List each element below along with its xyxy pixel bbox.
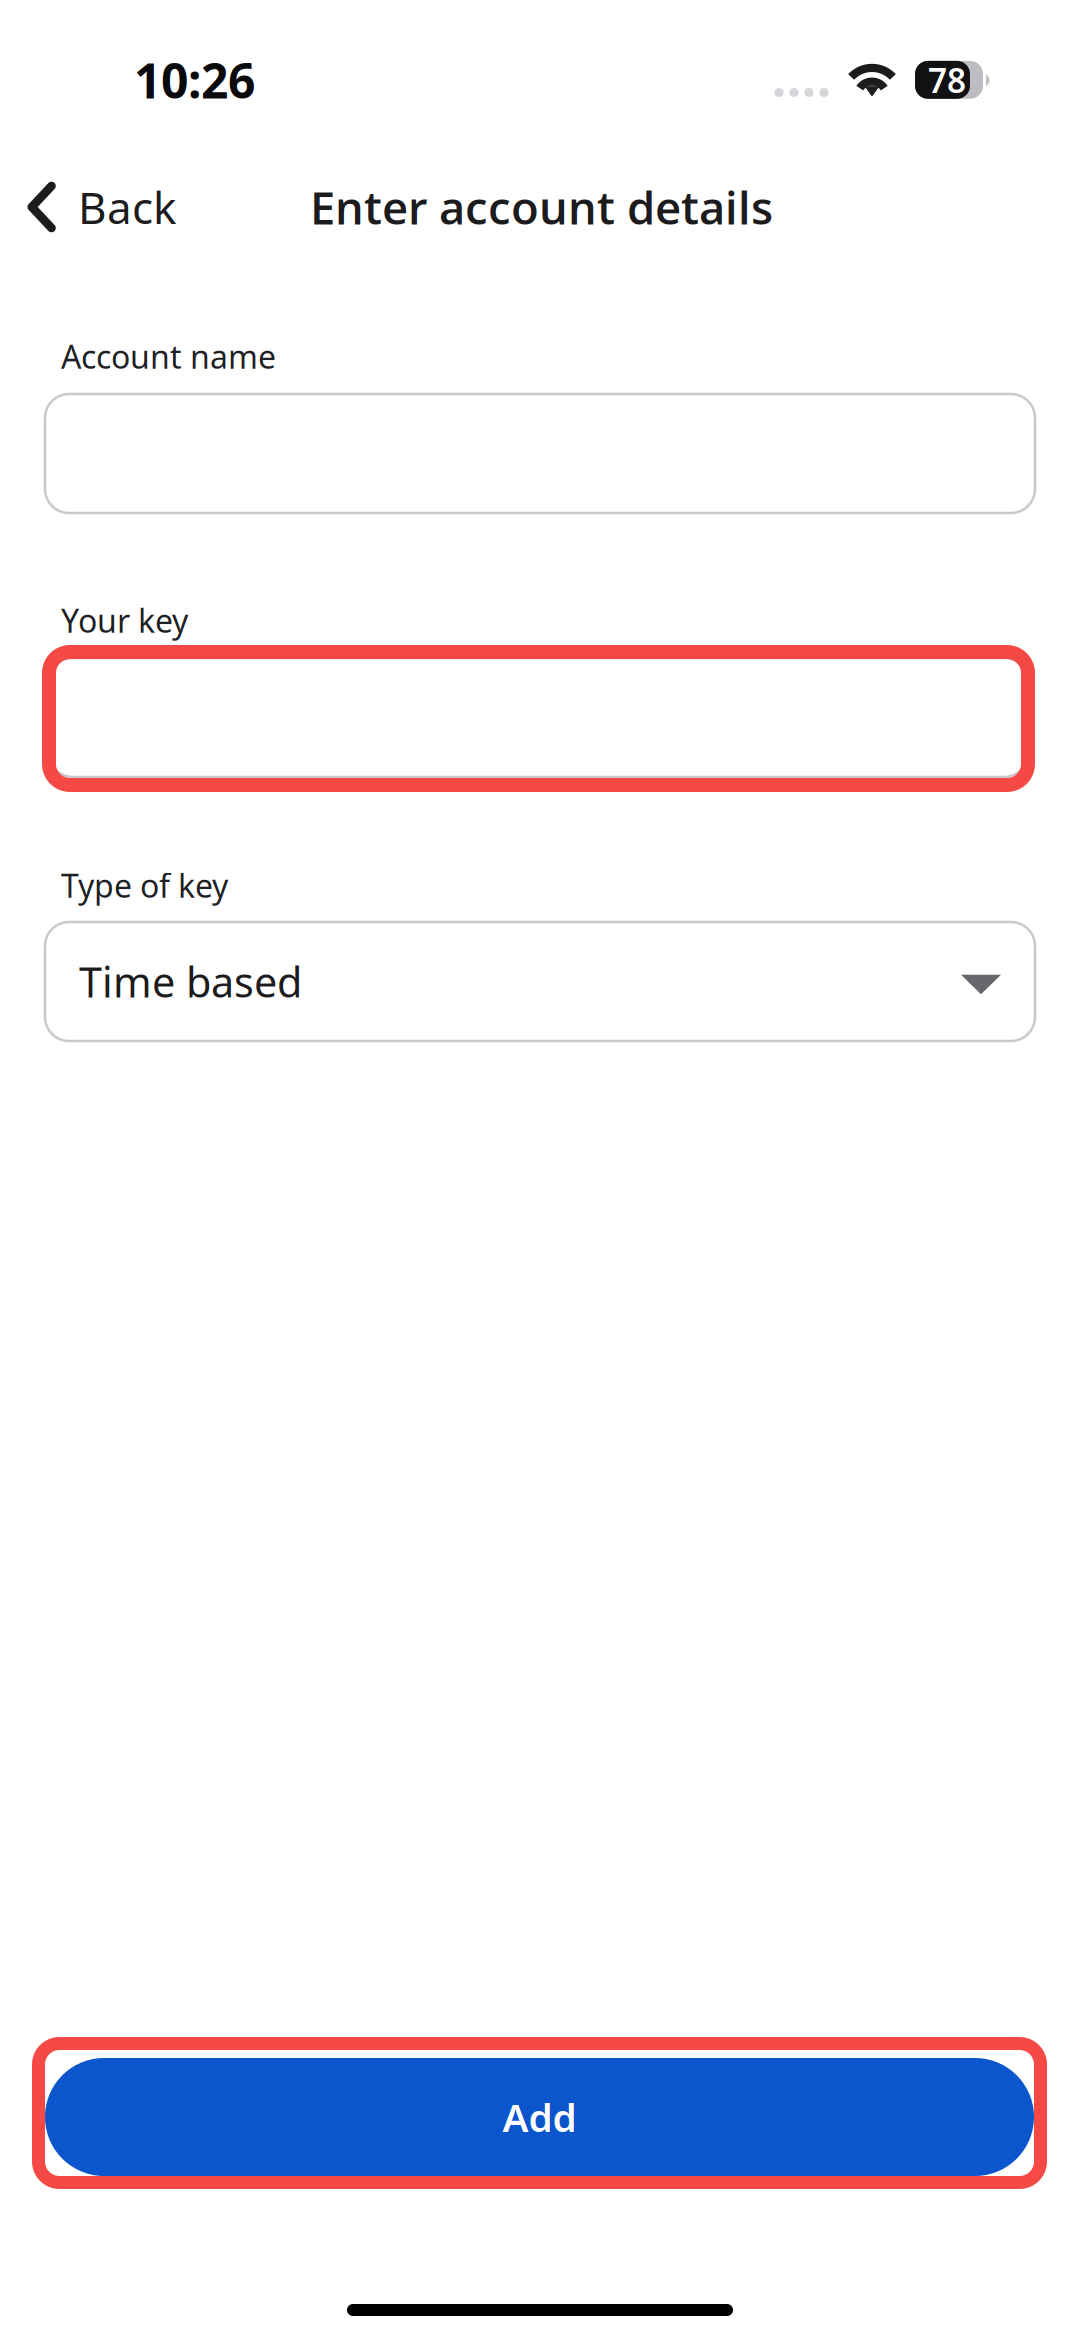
button[interactable]: Add [32, 2037, 1047, 2189]
button[interactable]: Time based [45, 922, 1035, 1041]
staticText: Add [502, 2091, 576, 2143]
staticText: 10:26 [134, 48, 255, 112]
staticText: Time based [79, 954, 302, 1009]
button[interactable] [42, 645, 1035, 792]
staticText: Account name [61, 335, 276, 377]
staticText: 78 [928, 58, 966, 102]
staticText: Your key [61, 599, 188, 641]
button[interactable]: Back [2, 164, 198, 250]
staticText: Back [78, 178, 176, 236]
staticText: Type of key [61, 864, 228, 906]
button[interactable] [45, 394, 1035, 513]
staticText: Enter account details [310, 176, 773, 238]
